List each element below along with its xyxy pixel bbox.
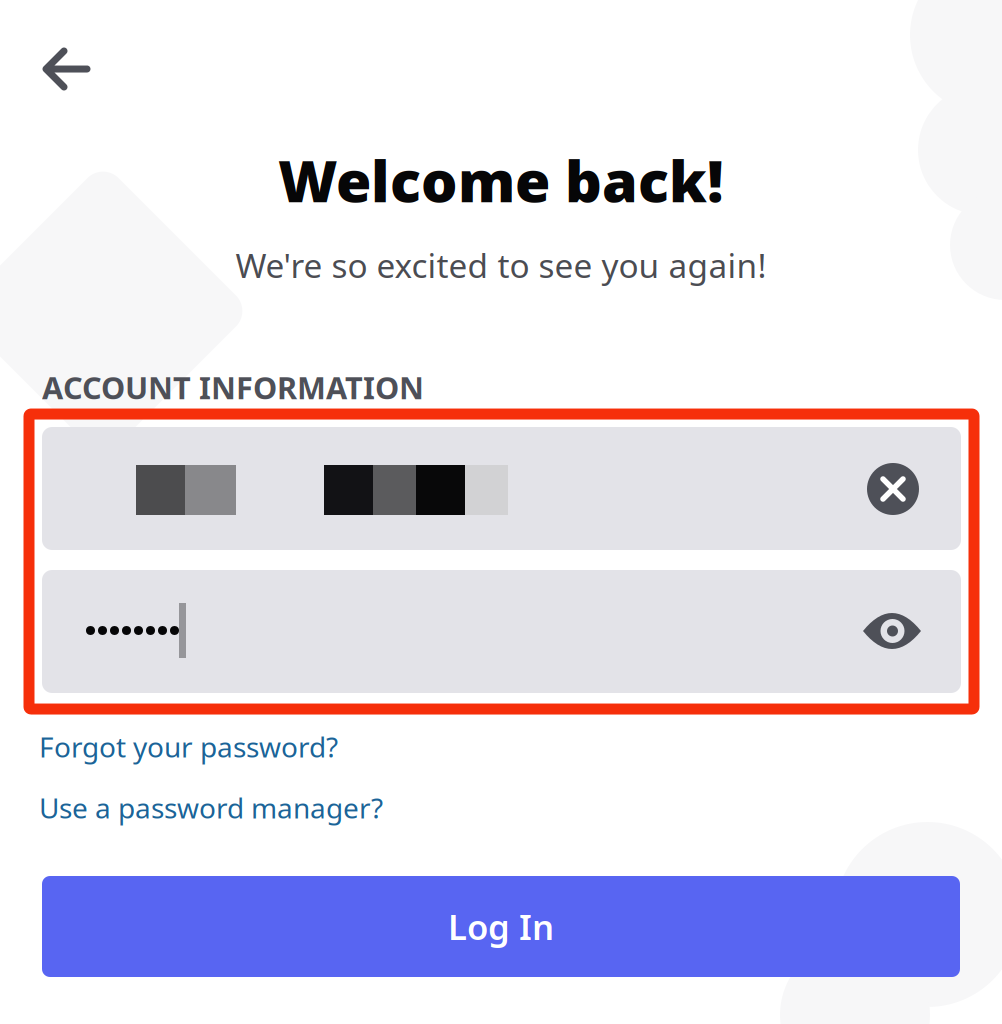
button[interactable]: Log In: [42, 876, 960, 977]
button[interactable]: Show password: [860, 609, 924, 653]
button[interactable]: Back: [27, 30, 105, 108]
staticText: We're so excited to see you again!: [235, 243, 766, 287]
staticText: Welcome back!: [278, 142, 724, 218]
staticText: Forgot your password?: [39, 728, 338, 765]
button[interactable]: Forgot your password?: [39, 728, 338, 765]
button[interactable]: Email or Phone Number: [42, 427, 961, 550]
staticText: Use a password manager?: [39, 789, 383, 826]
button[interactable]: Clear text: [863, 459, 923, 519]
button[interactable]: Password: [42, 570, 961, 693]
staticText: Log In: [448, 903, 554, 949]
button[interactable]: Use a password manager?: [39, 789, 383, 826]
staticText: ACCOUNT INFORMATION: [42, 367, 424, 408]
